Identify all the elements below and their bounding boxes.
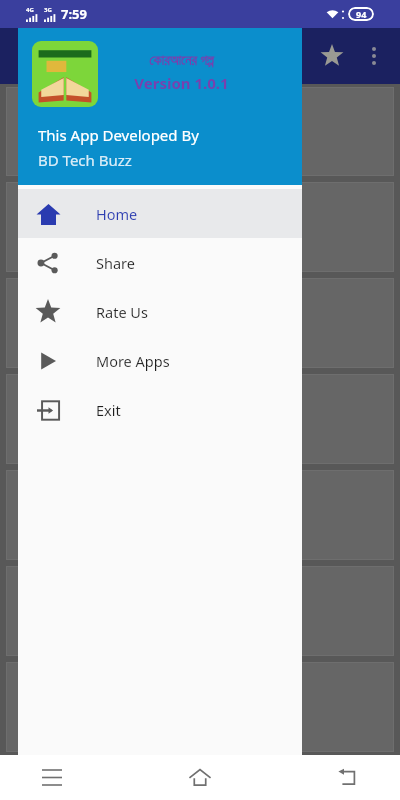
staticText: Exit — [96, 400, 121, 420]
button[interactable] — [6, 374, 394, 464]
staticText: 7:59 — [61, 5, 87, 23]
staticText: More Apps — [96, 351, 170, 371]
button[interactable] — [6, 662, 394, 752]
staticText: কোরআনের গল্প — [149, 50, 214, 69]
button[interactable]: Home — [174, 755, 226, 800]
staticText: 3G — [44, 6, 52, 14]
button[interactable] — [6, 278, 394, 368]
staticText: 94 — [356, 8, 367, 20]
button[interactable] — [6, 566, 394, 656]
staticText: This App Developed By — [38, 125, 199, 145]
button[interactable] — [6, 182, 394, 272]
button[interactable] — [6, 87, 394, 176]
button[interactable]: Favourites — [312, 36, 352, 76]
button[interactable]: Share — [18, 238, 302, 287]
staticText: BD Tech Buzz — [38, 150, 132, 170]
staticText: Home — [96, 204, 138, 224]
button[interactable]: Exit — [18, 385, 302, 434]
staticText: 4G — [26, 6, 34, 14]
button[interactable]: More options — [354, 36, 394, 76]
staticText: Share — [96, 253, 135, 273]
button[interactable]: Recent apps — [26, 755, 78, 800]
button[interactable]: Rate Us — [18, 287, 302, 336]
staticText: Version 1.0.1 — [134, 73, 229, 93]
button[interactable] — [6, 470, 394, 560]
button[interactable]: More Apps — [18, 336, 302, 385]
button[interactable]: Home — [18, 189, 302, 238]
staticText: Rate Us — [96, 302, 148, 322]
button[interactable]: Back — [322, 755, 374, 800]
